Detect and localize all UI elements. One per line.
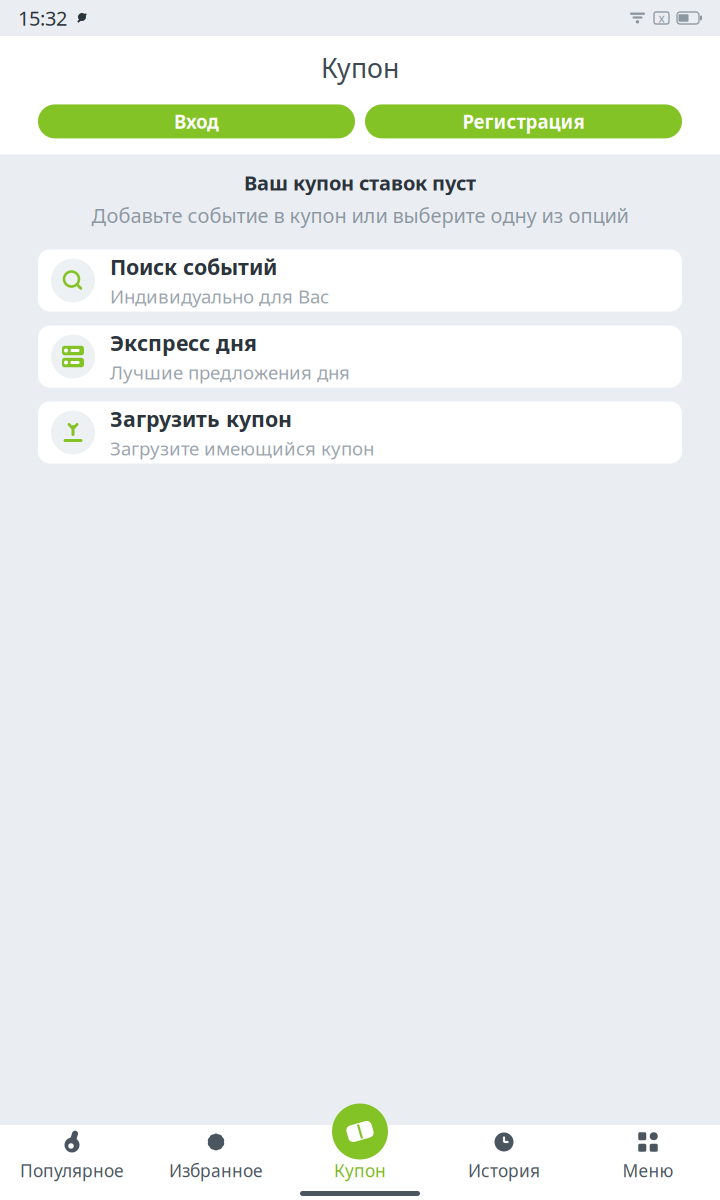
staticText: 15:32	[18, 5, 67, 31]
staticText: Популярное	[20, 1159, 124, 1182]
button[interactable]: Купон	[332, 1103, 388, 1159]
staticText: Экспресс дня	[110, 328, 257, 357]
staticText: Купон	[334, 1159, 386, 1182]
button[interactable]: Экспресс дня	[38, 325, 682, 387]
staticText: Добавьте событие в купон или выберите од…	[91, 202, 628, 229]
staticText: Регистрация	[462, 109, 584, 134]
staticText: Ваш купон ставок пуст	[244, 169, 476, 196]
staticText: Купон	[321, 50, 399, 85]
button[interactable]: История	[432, 1125, 576, 1187]
button[interactable]: Регистрация	[365, 104, 682, 138]
staticText: Лучшие предложения дня	[110, 360, 350, 385]
button[interactable]: Поиск событий	[38, 249, 682, 311]
staticText: x	[658, 10, 664, 26]
button[interactable]: Загрузить купон	[38, 401, 682, 463]
staticText: Индивидуально для Вас	[110, 284, 329, 309]
staticText: История	[468, 1159, 540, 1182]
button[interactable]: Меню	[576, 1125, 720, 1187]
button[interactable]: Вход	[38, 104, 355, 138]
button[interactable]: Популярное	[0, 1125, 144, 1187]
staticText: Поиск событий	[110, 252, 277, 281]
staticText: Загрузить купон	[110, 404, 292, 433]
staticText: Загрузите имеющийся купон	[110, 436, 374, 461]
staticText: Избранное	[169, 1159, 263, 1182]
button[interactable]: Купон	[288, 1125, 432, 1187]
button[interactable]: Избранное	[144, 1125, 288, 1187]
staticText: Меню	[622, 1159, 673, 1182]
staticText: Вход	[174, 109, 219, 134]
